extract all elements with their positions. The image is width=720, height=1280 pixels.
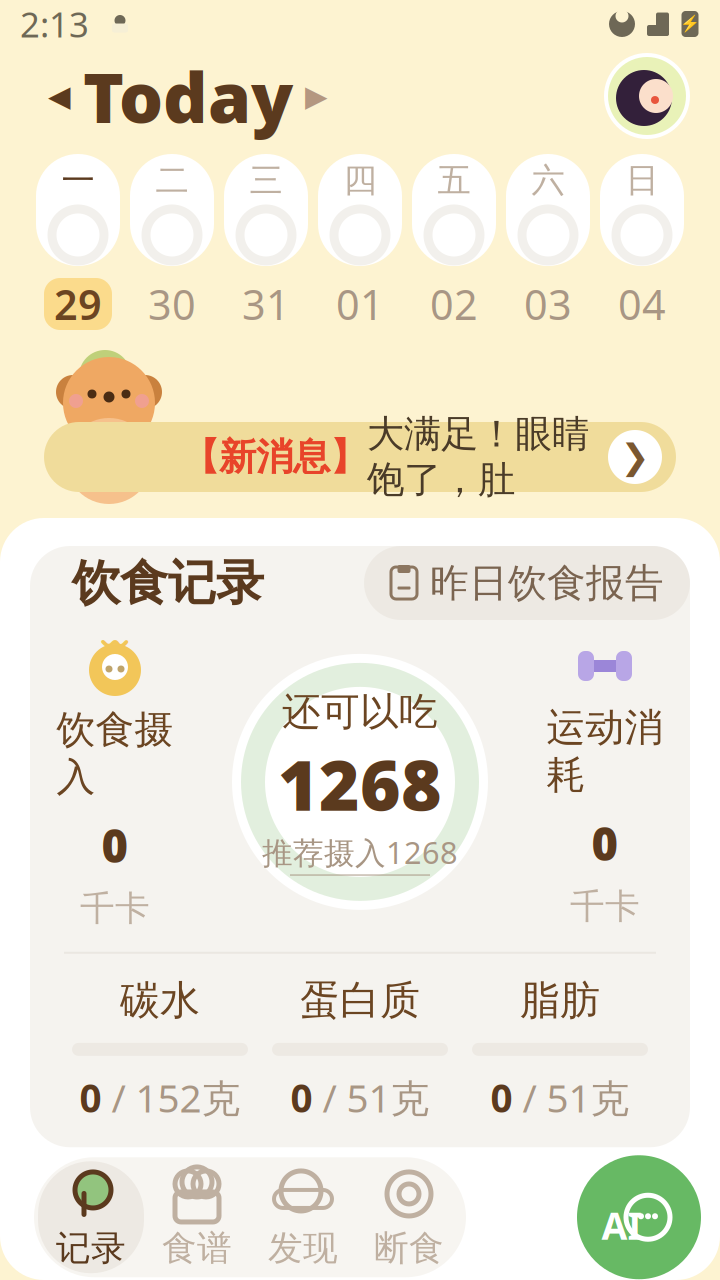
staticText: 二 <box>155 160 188 201</box>
staticText: 01 <box>336 277 384 331</box>
button[interactable]: 一 <box>36 154 120 266</box>
button[interactable]: 31 <box>224 278 308 330</box>
staticText: 一 <box>61 160 94 201</box>
staticText: 五 <box>437 160 470 201</box>
staticText: 断食 <box>374 1227 444 1270</box>
button[interactable]: 三 <box>224 154 308 266</box>
staticText: 【新消息】 <box>182 434 367 480</box>
staticText: 三 <box>249 160 282 201</box>
button[interactable]: 食谱 <box>144 1161 250 1273</box>
staticText: 29 <box>54 277 102 331</box>
staticText: 蛋白质 <box>300 976 420 1025</box>
staticText: ⚡ <box>680 15 700 33</box>
staticText: / 152克 <box>101 1072 240 1123</box>
staticText: ❯ <box>620 437 649 477</box>
staticText: / 51克 <box>312 1072 429 1123</box>
button[interactable]: 日 <box>600 154 684 266</box>
staticText: 02 <box>430 277 478 331</box>
button[interactable]: 五 <box>412 154 496 266</box>
staticText: AI <box>601 1200 642 1250</box>
button[interactable]: Profile <box>604 53 690 139</box>
button[interactable]: 03 <box>506 278 590 330</box>
staticText: ▶ <box>305 79 328 113</box>
staticText: Today <box>83 50 293 142</box>
staticText: 0 <box>101 815 128 875</box>
staticText: 30 <box>148 277 196 331</box>
button[interactable]: 断食 <box>356 1161 462 1273</box>
button[interactable]: 29 <box>36 278 120 330</box>
staticText: ◀ <box>48 79 71 113</box>
staticText: 推荐摄入1268 <box>262 832 458 872</box>
staticText: 04 <box>618 277 666 331</box>
staticText: 饮食记录 <box>72 553 264 612</box>
staticText: 大满足！眼睛饱了，肚 <box>367 411 589 503</box>
staticText: 0 <box>290 1072 312 1123</box>
staticText: 昨日饮食报告 <box>430 559 664 607</box>
button[interactable]: 04 <box>600 278 684 330</box>
button[interactable]: AI assistant <box>574 1155 704 1279</box>
button[interactable]: 发现 <box>250 1161 356 1273</box>
staticText: 还可以吃 <box>282 688 438 736</box>
button[interactable]: 六 <box>506 154 590 266</box>
staticText: 碳水 <box>120 976 200 1025</box>
button[interactable]: 四 <box>318 154 402 266</box>
staticText: 31 <box>242 277 290 331</box>
staticText: 千卡 <box>570 885 640 928</box>
staticText: 0 <box>490 1072 512 1123</box>
button[interactable]: 01 <box>318 278 402 330</box>
staticText: 脂肪 <box>520 976 600 1025</box>
staticText: / 51克 <box>512 1072 629 1123</box>
staticText: 2:13 <box>20 1 89 47</box>
button[interactable]: ◀ <box>48 50 328 142</box>
button[interactable]: 【新消息】 <box>0 422 720 492</box>
button[interactable]: 记录 <box>38 1161 144 1273</box>
staticText: 发现 <box>268 1227 338 1270</box>
staticText: 千卡 <box>80 887 150 930</box>
button[interactable]: 30 <box>130 278 214 330</box>
staticText: 饮食摄入 <box>56 706 173 801</box>
staticText: 记录 <box>56 1227 126 1270</box>
staticText: 1268 <box>278 738 442 830</box>
staticText: 六 <box>531 160 564 201</box>
staticText: 运动消耗 <box>546 704 663 799</box>
button[interactable]: 二 <box>130 154 214 266</box>
staticText: 0 <box>79 1072 101 1123</box>
button[interactable]: 昨日饮食报告 <box>364 546 690 620</box>
staticText: 〰 <box>98 629 132 659</box>
staticText: 03 <box>524 277 572 331</box>
staticText: 日 <box>625 160 658 201</box>
staticText: 食谱 <box>162 1227 232 1270</box>
button[interactable]: 02 <box>412 278 496 330</box>
staticText: 四 <box>343 160 376 201</box>
staticText: 0 <box>591 813 618 873</box>
